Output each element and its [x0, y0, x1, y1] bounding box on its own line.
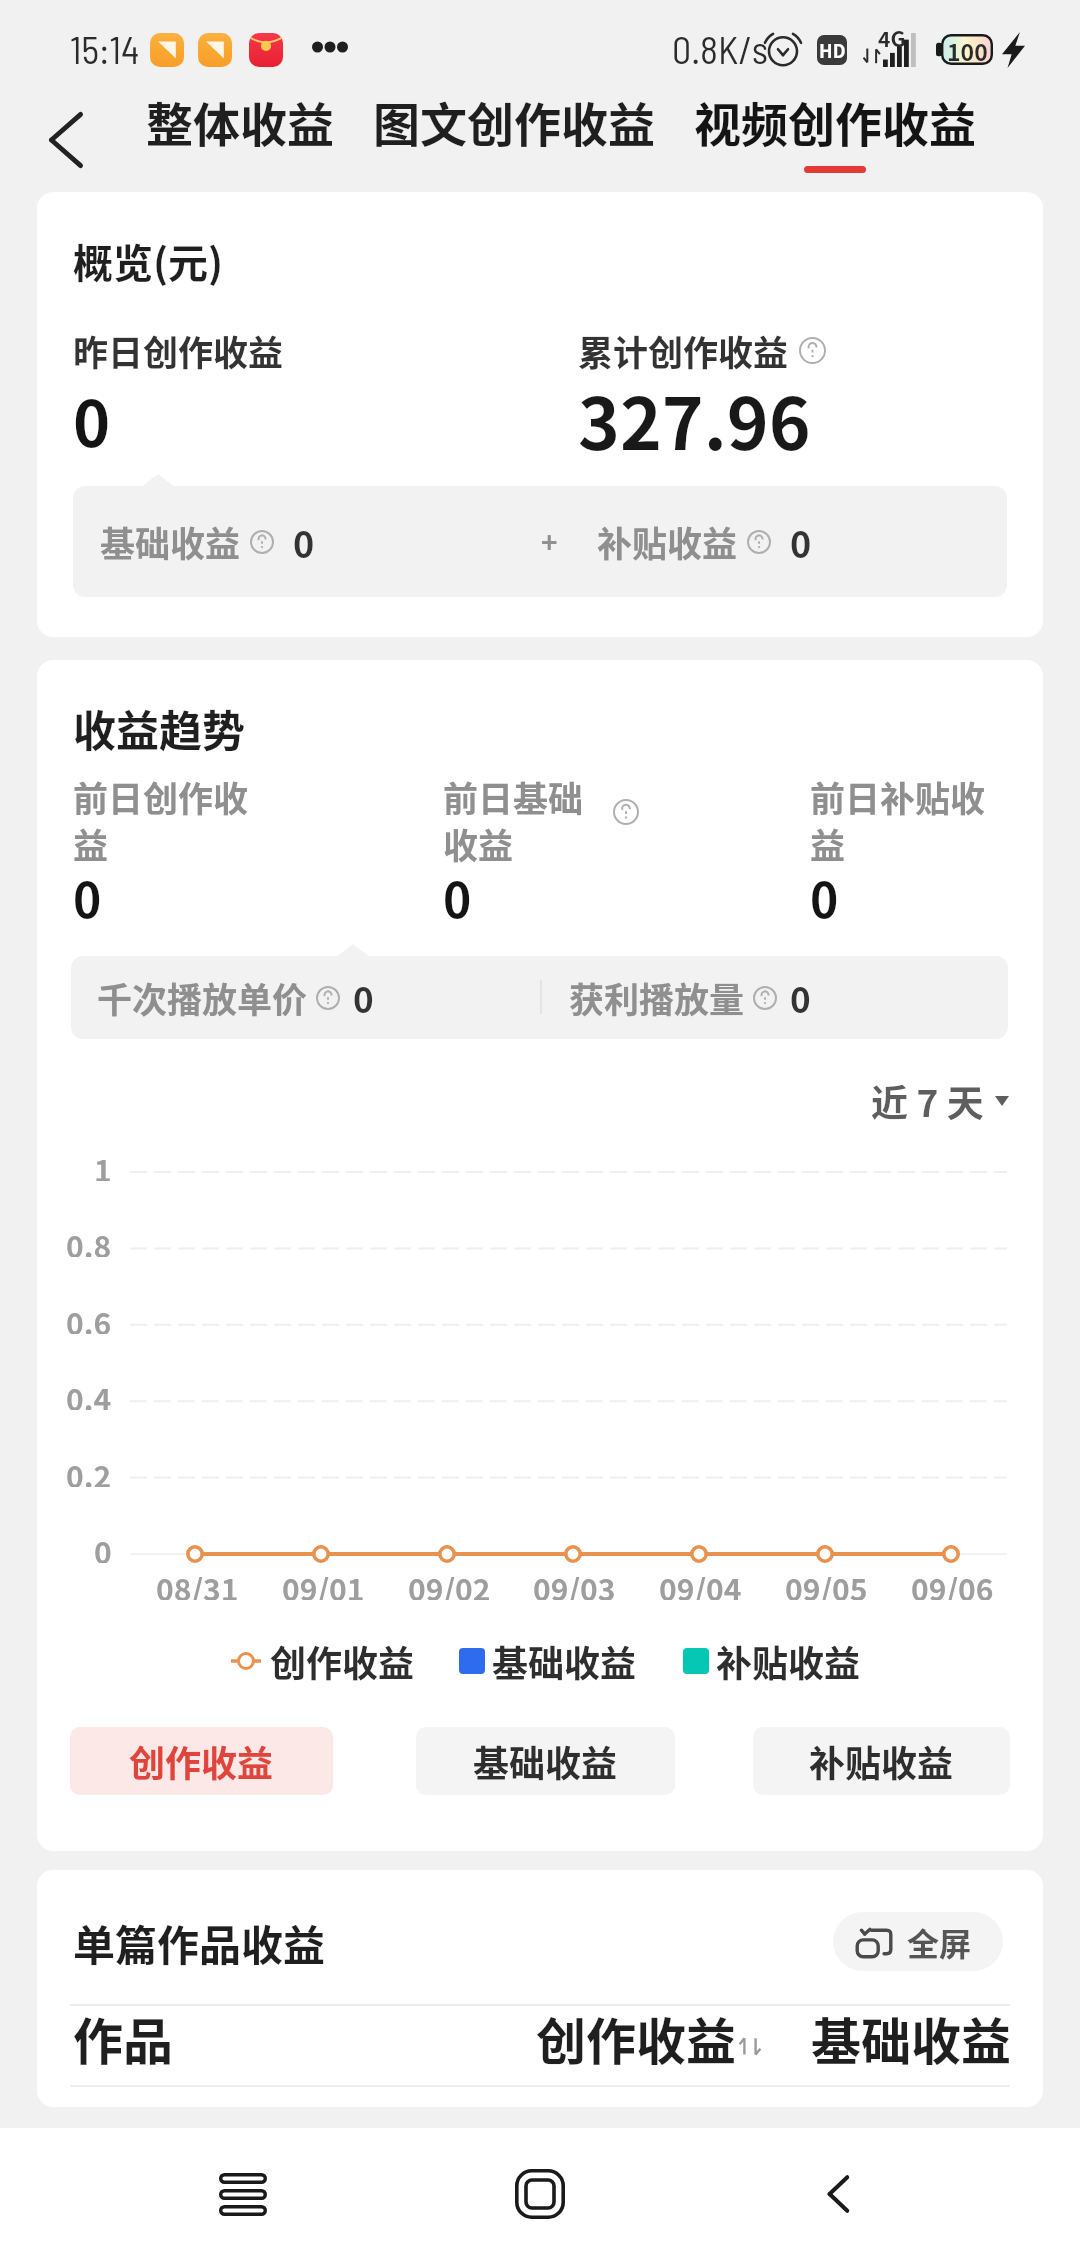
- staticText: 0: [94, 1529, 112, 1563]
- button[interactable]: 补贴收益: [677, 1635, 867, 1687]
- staticText: 4G: [878, 23, 906, 53]
- button[interactable]: 基础收益: [416, 1727, 675, 1795]
- staticText: 补贴收益: [809, 1735, 954, 1787]
- staticText: 0: [810, 862, 839, 932]
- staticText: 图文创作收益: [373, 87, 655, 155]
- button[interactable]: 近 7 天: [867, 1070, 1013, 1132]
- staticText: 视频创作收益: [694, 87, 976, 155]
- staticText: 0: [353, 972, 374, 1023]
- staticText: 近 7 天: [871, 1074, 984, 1128]
- staticText: 单篇作品收益: [73, 1912, 326, 1973]
- staticText: 创作收益: [536, 2002, 736, 2074]
- staticText: 0: [73, 862, 102, 932]
- button[interactable]: Recents: [188, 2139, 298, 2249]
- button[interactable]: 创作收益: [70, 1727, 333, 1795]
- staticText: 0.8: [66, 1223, 112, 1257]
- staticText: HD: [819, 37, 846, 63]
- staticText: 前日补贴收 益: [810, 771, 986, 870]
- staticText: 作品: [73, 2002, 173, 2074]
- staticText: 基础收益: [492, 1635, 637, 1687]
- staticText: 基础收益: [473, 1735, 618, 1787]
- staticText: 千次播放单价: [97, 972, 308, 1023]
- staticText: +: [541, 521, 558, 562]
- staticText: 0.4: [66, 1376, 112, 1410]
- staticText: 创作收益: [270, 1635, 415, 1687]
- staticText: 补贴收益: [716, 1635, 861, 1687]
- button[interactable]: 图文创作收益: [367, 81, 661, 161]
- staticText: 09/06: [911, 1566, 994, 1600]
- button[interactable]: 创作收益: [225, 1635, 421, 1687]
- button[interactable]: 视频创作收益: [688, 81, 982, 179]
- staticText: 0.2: [66, 1453, 112, 1487]
- staticText: 累计创作收益: [578, 325, 789, 376]
- staticText: 概览(元): [73, 232, 224, 290]
- staticText: 100: [947, 34, 988, 65]
- staticText: 创作收益: [129, 1735, 274, 1787]
- staticText: 昨日创作收益: [73, 325, 284, 376]
- button[interactable]: 补贴收益: [753, 1727, 1010, 1795]
- staticText: 0.8K/s: [672, 26, 768, 72]
- staticText: 基础收益: [100, 516, 241, 567]
- button[interactable]: 全屏: [833, 1912, 1003, 1971]
- staticText: 补贴收益: [597, 516, 738, 567]
- staticText: 0: [443, 862, 472, 932]
- staticText: 获利播放量: [569, 972, 745, 1023]
- staticText: 全屏: [907, 1919, 972, 1965]
- staticText: 15:14: [70, 26, 140, 72]
- button[interactable]: 基础收益: [453, 1635, 643, 1687]
- staticText: 09/05: [785, 1566, 868, 1600]
- staticText: 1: [94, 1147, 112, 1181]
- button[interactable]: Back: [26, 100, 106, 180]
- staticText: 整体收益: [146, 87, 334, 155]
- staticText: 0: [790, 972, 811, 1023]
- staticText: 09/01: [282, 1566, 365, 1600]
- staticText: 0: [790, 516, 812, 568]
- staticText: 收益趋势: [73, 697, 245, 759]
- staticText: 08/31: [156, 1566, 239, 1600]
- button[interactable]: Back: [783, 2139, 893, 2249]
- staticText: 09/02: [408, 1566, 491, 1600]
- staticText: 0.6: [66, 1300, 112, 1334]
- staticText: 0: [293, 516, 315, 568]
- button[interactable]: 整体收益: [140, 81, 340, 161]
- staticText: 基础收益: [811, 2002, 1011, 2074]
- staticText: 前日基础 收益: [443, 771, 584, 870]
- staticText: 327.96: [578, 368, 811, 471]
- staticText: 09/04: [659, 1566, 742, 1600]
- staticText: 09/03: [533, 1566, 616, 1600]
- button[interactable]: Home: [485, 2139, 595, 2249]
- staticText: 0: [73, 374, 111, 465]
- staticText: 前日创作收 益: [73, 771, 249, 870]
